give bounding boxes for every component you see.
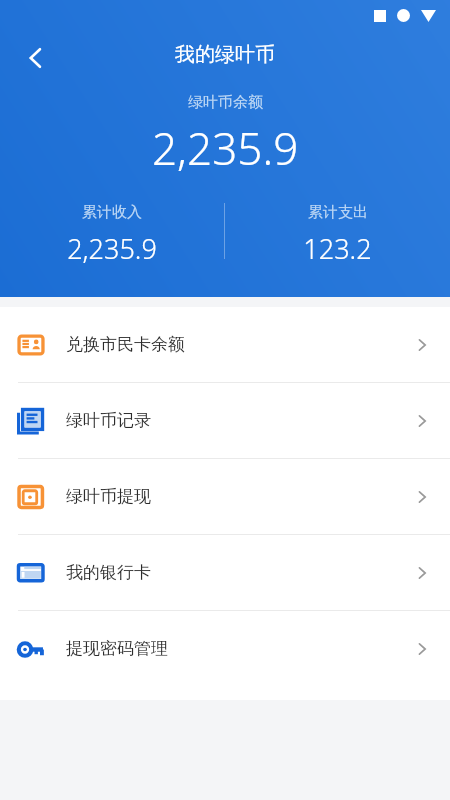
staticText: 绿叶币余额 <box>188 93 263 112</box>
button[interactable]: 提现密码管理 <box>0 611 450 686</box>
staticText: 累计收入 <box>82 203 142 222</box>
staticText: 兑换市民卡余额 <box>66 334 185 355</box>
staticText: 提现密码管理 <box>66 638 168 659</box>
staticText: 我的银行卡 <box>66 562 151 583</box>
button[interactable]: 我的银行卡 <box>0 535 450 610</box>
staticText: 累计支出 <box>308 203 368 222</box>
staticText: 我的绿叶币 <box>175 42 275 67</box>
button[interactable]: 绿叶币记录 <box>0 383 450 458</box>
staticText: 2,235.9 <box>152 118 299 178</box>
staticText: 绿叶币记录 <box>66 410 151 431</box>
staticText: 绿叶币提现 <box>66 486 151 507</box>
button[interactable]: 绿叶币提现 <box>0 459 450 534</box>
button[interactable]: Back <box>14 36 58 80</box>
staticText: 123.2 <box>303 230 372 267</box>
staticText: 2,235.9 <box>67 230 157 267</box>
button[interactable]: 兑换市民卡余额 <box>0 307 450 382</box>
